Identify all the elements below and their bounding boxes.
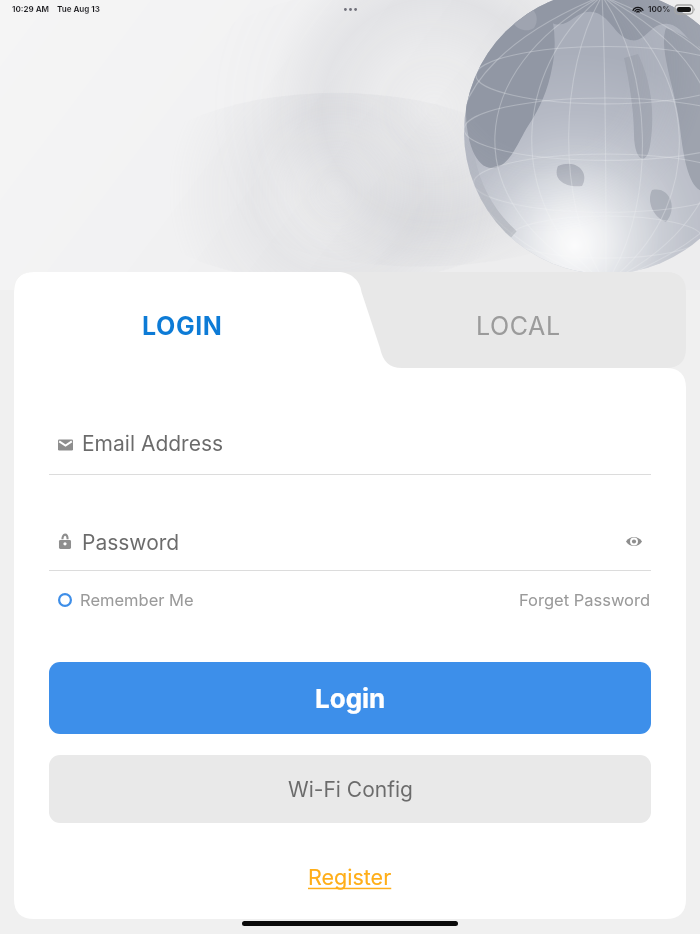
staticText: Email Address <box>82 431 224 456</box>
staticText: Remember Me <box>80 590 194 610</box>
staticText: 10:29 AM <box>12 4 50 14</box>
button[interactable]: Email Address <box>49 416 651 474</box>
staticText: LOCAL <box>476 311 561 341</box>
staticText: Tue Aug 13 <box>57 4 100 14</box>
button[interactable]: Wi-Fi Config <box>49 755 651 823</box>
button[interactable]: Register <box>308 864 392 890</box>
button[interactable]: LOCAL <box>350 278 686 374</box>
staticText: Password <box>82 530 180 555</box>
button[interactable]: Login <box>49 662 651 734</box>
staticText: LOGIN <box>142 311 223 341</box>
button[interactable]: LOGIN <box>14 278 350 374</box>
button[interactable]: Forget Password <box>519 590 651 610</box>
staticText: Forget Password <box>519 590 651 610</box>
button[interactable]: Show password <box>617 527 651 561</box>
staticText: 100% <box>648 4 671 14</box>
staticText: Login <box>315 683 386 714</box>
button[interactable]: Remember Me <box>49 590 194 610</box>
staticText: Wi-Fi Config <box>288 777 413 802</box>
staticText: Register <box>308 864 392 890</box>
